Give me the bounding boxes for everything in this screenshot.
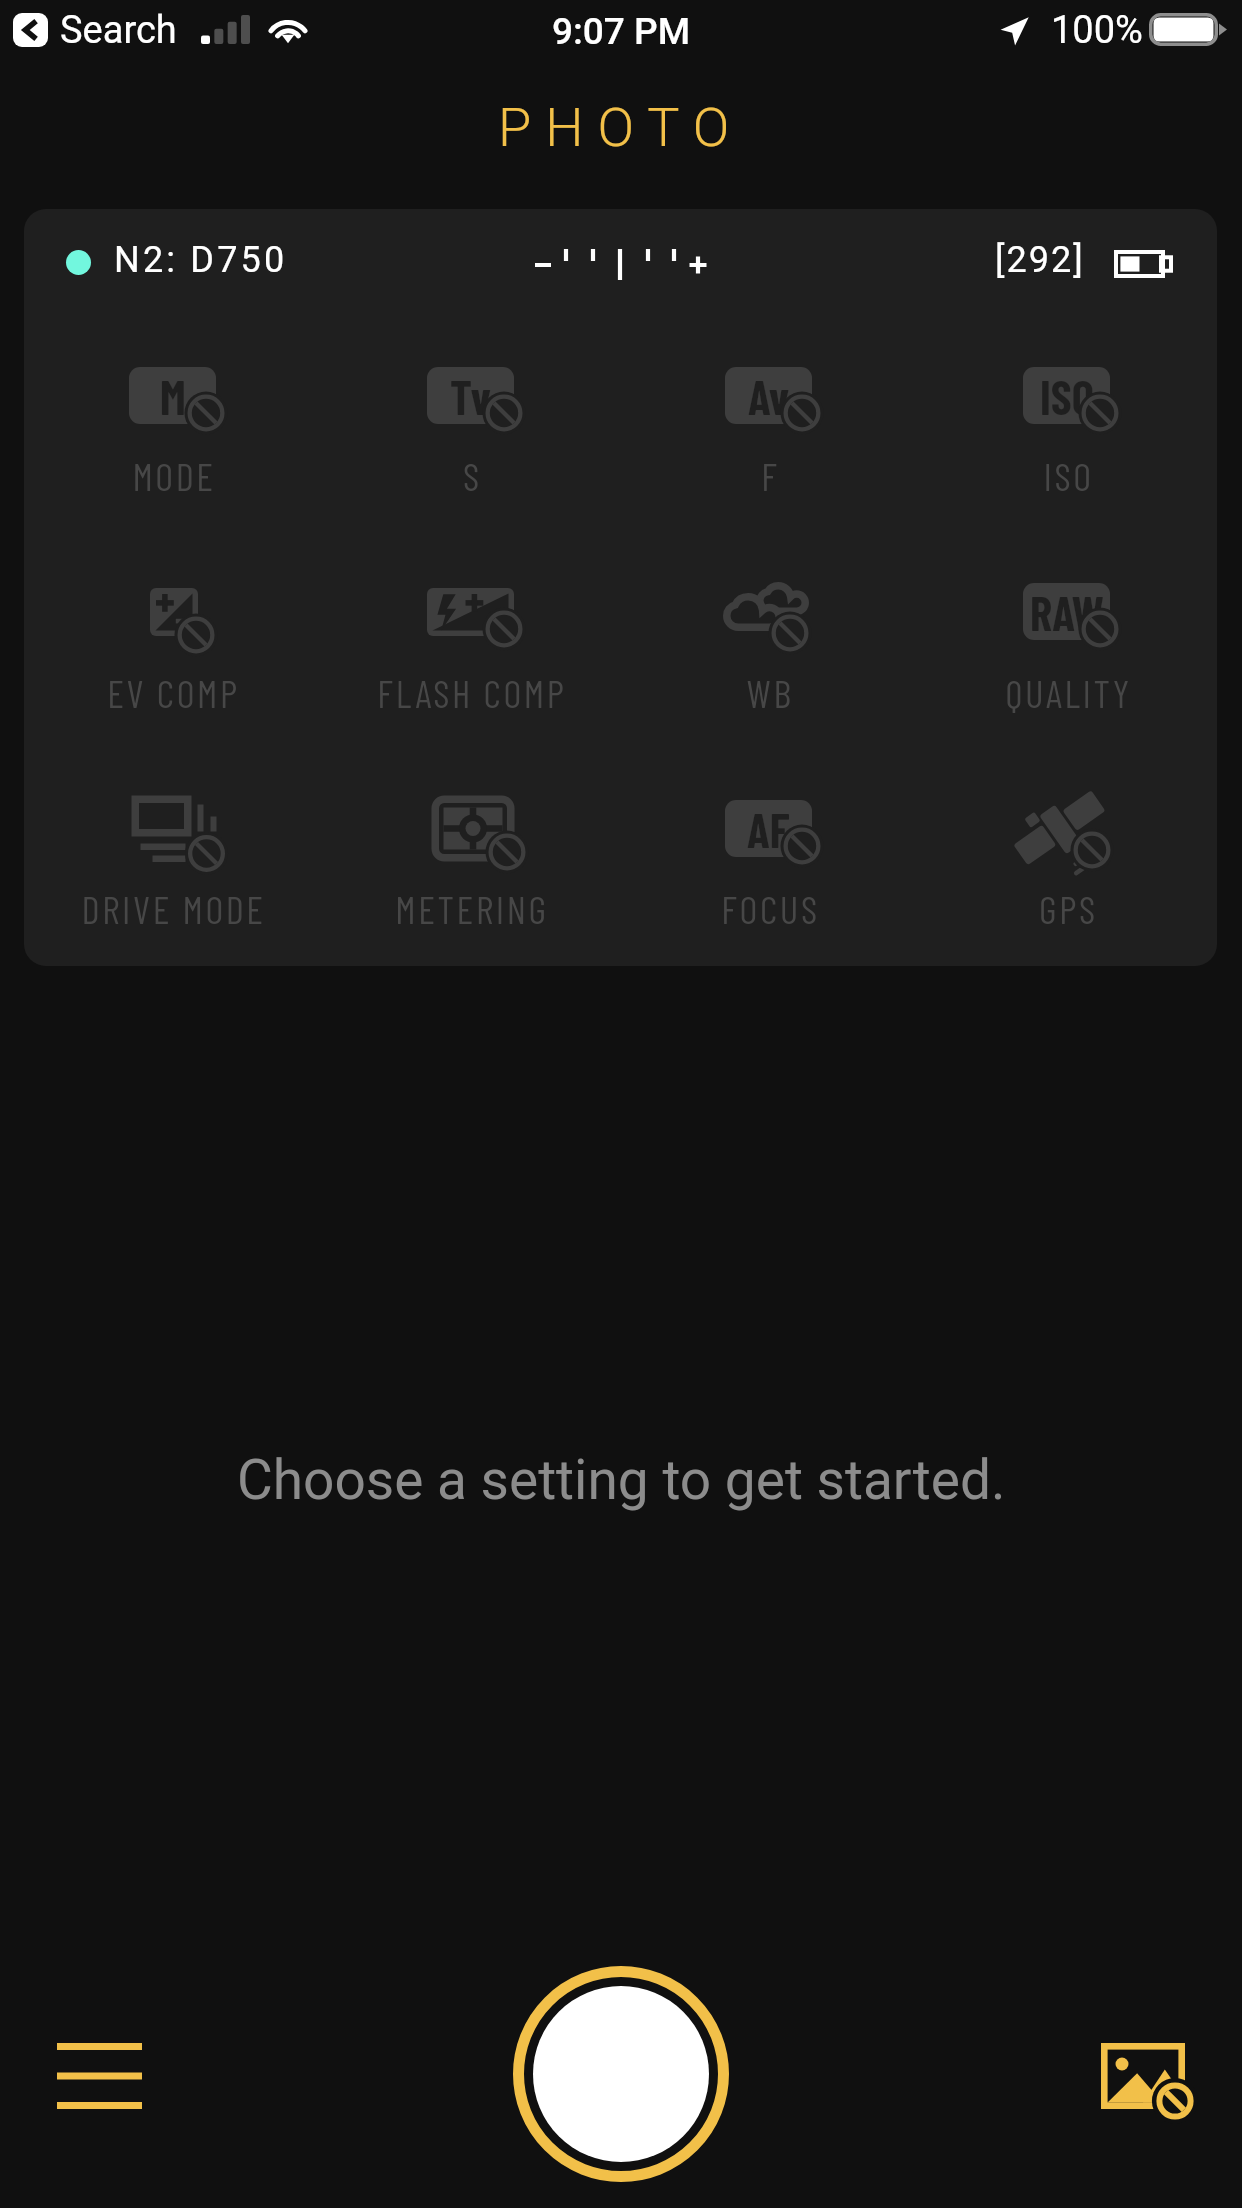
staticText: GPS [1039, 885, 1098, 932]
staticText: Search [60, 8, 177, 53]
staticText: WB [746, 669, 794, 716]
staticText: 100% [1051, 8, 1143, 53]
staticText: Tv [450, 368, 492, 424]
staticText: Choose a setting to get started. [237, 1448, 1006, 1512]
button[interactable]: GPS [919, 729, 1217, 929]
button[interactable]: DRIVE MODE [24, 729, 323, 929]
staticText: S [463, 452, 482, 499]
staticText: AF [747, 801, 790, 857]
staticText: Av [748, 368, 790, 424]
staticText: N2: D750 [114, 239, 288, 281]
staticText: RAW [1030, 584, 1104, 640]
button[interactable]: QUALITY [919, 512, 1217, 712]
staticText: 9:07 PM [552, 10, 691, 53]
staticText: DRIVE MODE [81, 885, 266, 932]
staticText: ISO [1043, 452, 1094, 499]
button[interactable]: ISO [919, 296, 1217, 496]
button[interactable]: Shutter [505, 1958, 737, 2190]
staticText: METERING [395, 885, 549, 932]
staticText: QUALITY [1005, 669, 1132, 716]
button[interactable]: Back to Search [13, 13, 48, 47]
button[interactable]: METERING [323, 729, 621, 929]
staticText: MODE [132, 452, 216, 499]
staticText: M [160, 368, 186, 424]
button[interactable]: Gallery [1072, 2020, 1212, 2140]
staticText: ISO [1040, 368, 1094, 424]
staticText: PHOTO [498, 96, 744, 152]
staticText: FOCUS [721, 885, 820, 932]
button[interactable]: WB [621, 512, 919, 712]
button[interactable]: F [621, 296, 919, 496]
staticText: F [761, 452, 780, 499]
staticText: [292] [995, 239, 1085, 281]
button[interactable]: EV COMP [24, 512, 323, 712]
staticText: EV COMP [107, 669, 240, 716]
button[interactable]: FLASH COMP [323, 512, 621, 712]
staticText: FLASH COMP [377, 669, 567, 716]
button[interactable]: Menu [25, 2016, 173, 2136]
button[interactable]: S [323, 296, 621, 496]
button[interactable]: FOCUS [621, 729, 919, 929]
button[interactable]: MODE [24, 296, 323, 496]
